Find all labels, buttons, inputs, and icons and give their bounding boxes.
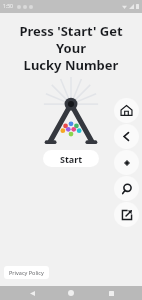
staticText: Press 'Start' Get Your Lucky Number	[6, 22, 136, 74]
button[interactable]: Share	[114, 202, 139, 227]
button[interactable]: Recents	[103, 286, 119, 300]
button[interactable]: Refresh	[114, 150, 139, 175]
button[interactable]: Home	[63, 286, 79, 300]
button[interactable]: Start	[43, 150, 99, 167]
button[interactable]: Privacy Policy	[4, 266, 49, 279]
button[interactable]: Back	[114, 124, 139, 149]
button[interactable]: Home	[114, 98, 139, 123]
staticText: Start	[60, 153, 83, 165]
button[interactable]: Back	[24, 286, 40, 300]
staticText: Privacy Policy	[9, 269, 44, 276]
button[interactable]: Search	[114, 176, 139, 201]
staticText: 1:50	[3, 3, 13, 10]
